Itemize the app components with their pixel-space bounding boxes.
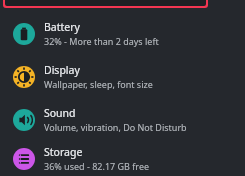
staticText: 32% - More than 2 days left	[44, 35, 159, 47]
staticText: Storage	[44, 145, 83, 159]
staticText: 36% used - 82.17 GB free	[44, 160, 150, 172]
other: Display	[13, 66, 35, 88]
staticText: Sound	[44, 106, 76, 120]
button[interactable]: Sound	[0, 98, 245, 141]
other: Storage	[13, 148, 35, 170]
button[interactable]: Storage	[0, 141, 245, 176]
button[interactable]: Display	[0, 55, 245, 98]
staticText: Battery	[44, 20, 80, 34]
staticText: Wallpaper, sleep, font size	[44, 78, 153, 90]
staticText: Display	[44, 63, 80, 77]
button[interactable]: Battery	[0, 12, 245, 55]
other: Sound	[13, 109, 35, 131]
staticText: Volume, vibration, Do Not Disturb	[44, 121, 187, 133]
other: Battery	[13, 23, 35, 45]
